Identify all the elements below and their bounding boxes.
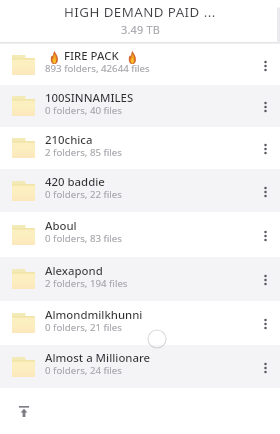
staticText: Almost a Millionare xyxy=(45,350,151,366)
staticText: 0 folders, 40 files xyxy=(45,104,122,117)
button[interactable]: Upload xyxy=(11,398,37,424)
staticText: 100SINNAMILES xyxy=(45,90,134,106)
staticText: Alexapond xyxy=(45,263,103,279)
staticText: FIRE PACK xyxy=(64,48,119,64)
staticText: 0 folders, 83 files xyxy=(45,232,122,245)
staticText: 420 baddie xyxy=(45,174,105,190)
staticText: 2 folders, 194 files xyxy=(45,277,128,290)
button[interactable]: 420 baddie xyxy=(0,169,280,212)
button[interactable]: More options xyxy=(250,212,280,257)
button[interactable]: More options xyxy=(250,44,280,85)
button[interactable]: Almondmilkhunni xyxy=(0,301,280,345)
staticText: Almondmilkhunni xyxy=(45,307,143,323)
button[interactable]: More options xyxy=(250,85,280,127)
button[interactable]: Almost a Millionare xyxy=(0,345,280,388)
staticText: 0 folders, 22 files xyxy=(45,188,122,201)
staticText: 893 folders, 42644 files xyxy=(45,62,150,75)
staticText: HIGH DEMAND PAID ... xyxy=(64,3,216,21)
staticText: 2 folders, 85 files xyxy=(45,146,122,159)
button[interactable]: 210chica xyxy=(0,127,280,169)
staticText: 3.49 TB xyxy=(121,22,160,37)
staticText: 0 folders, 24 files xyxy=(45,364,122,377)
staticText: 210chica xyxy=(45,132,93,148)
button[interactable]: More options xyxy=(250,127,280,169)
button[interactable]: More options xyxy=(250,257,280,301)
button[interactable]: Aboul xyxy=(0,212,280,257)
button[interactable]: More options xyxy=(250,345,280,388)
staticText: 0 folders, 21 files xyxy=(45,321,122,334)
staticText: Aboul xyxy=(45,218,77,234)
button[interactable]: FIRE PACK xyxy=(0,44,280,85)
button[interactable]: Alexapond xyxy=(0,257,280,301)
button[interactable]: More options xyxy=(250,169,280,212)
button[interactable]: 100SINNAMILES xyxy=(0,85,280,127)
button[interactable]: More options xyxy=(250,301,280,345)
